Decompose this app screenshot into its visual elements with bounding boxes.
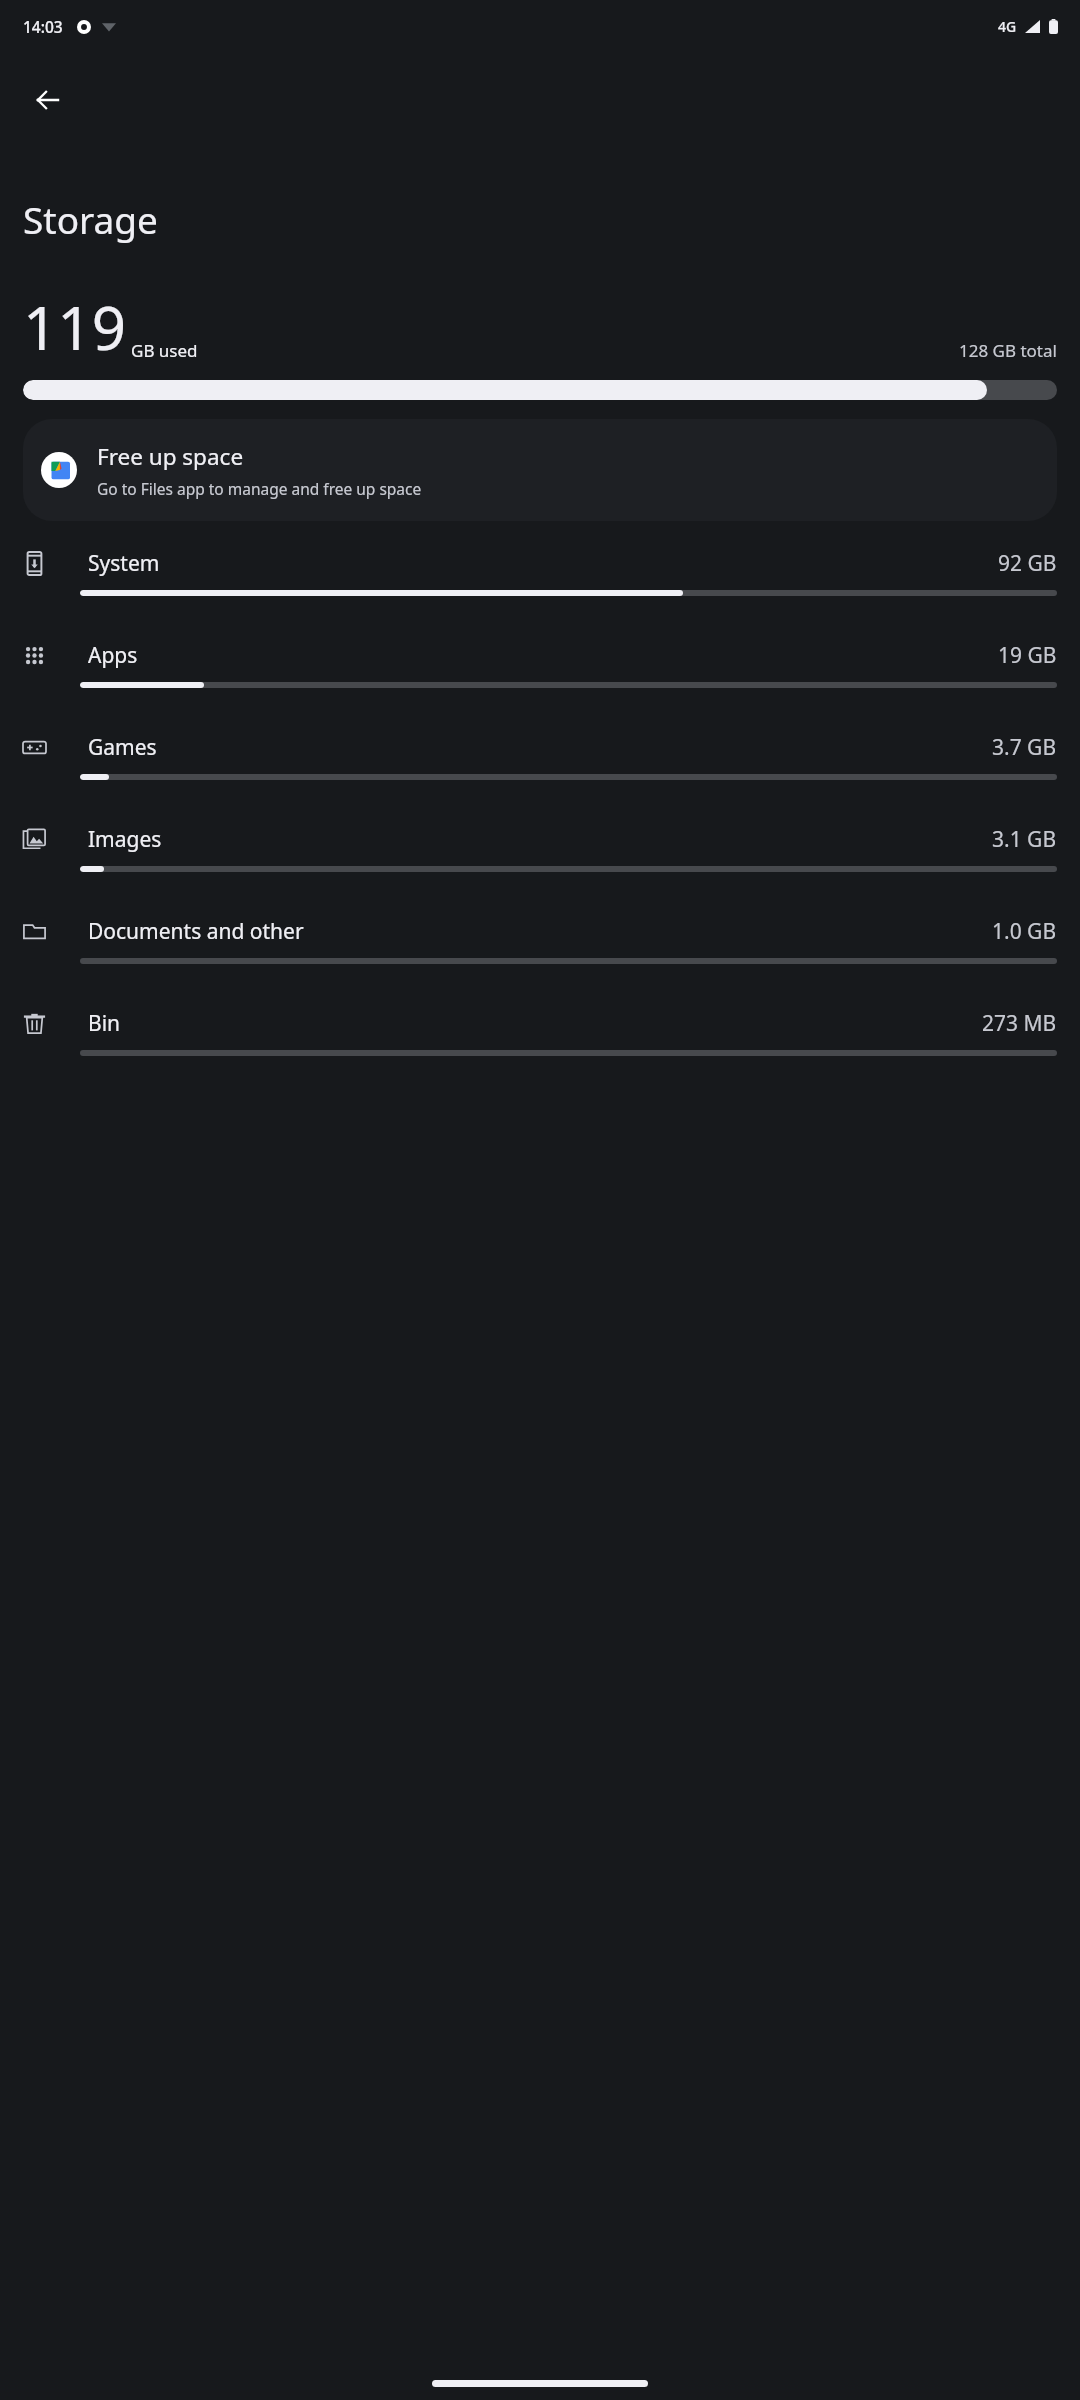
button[interactable]: Apps [0,629,1080,721]
button[interactable]: Bin [0,997,1080,1089]
staticText: 3.7 GB [992,733,1057,762]
staticText: 14:03 [23,16,63,37]
staticText: Free up space [97,441,244,472]
staticText: 19 GB [998,641,1057,670]
button[interactable]: System [0,537,1080,629]
button[interactable]: Back [24,76,72,124]
staticText: 92 GB [998,549,1057,578]
staticText: System [88,549,160,578]
staticText: 4G [998,17,1017,36]
staticText: Games [88,733,157,762]
staticText: Images [88,825,162,854]
staticText: Bin [88,1009,121,1038]
staticText: 1.0 GB [992,917,1057,946]
staticText: 273 MB [982,1009,1057,1038]
staticText: Go to Files app to manage and free up sp… [97,478,422,499]
staticText: Storage [23,194,158,244]
staticText: GB used [131,339,198,362]
staticText: 119 [23,286,126,368]
button[interactable]: Games [0,721,1080,813]
staticText: Documents and other [88,917,304,946]
button[interactable]: Documents and other [0,905,1080,997]
button[interactable]: Images [0,813,1080,905]
staticText: Apps [88,641,138,670]
staticText: 128 GB total [959,339,1057,362]
button[interactable]: Free up space [23,419,1057,521]
staticText: 3.1 GB [992,825,1057,854]
